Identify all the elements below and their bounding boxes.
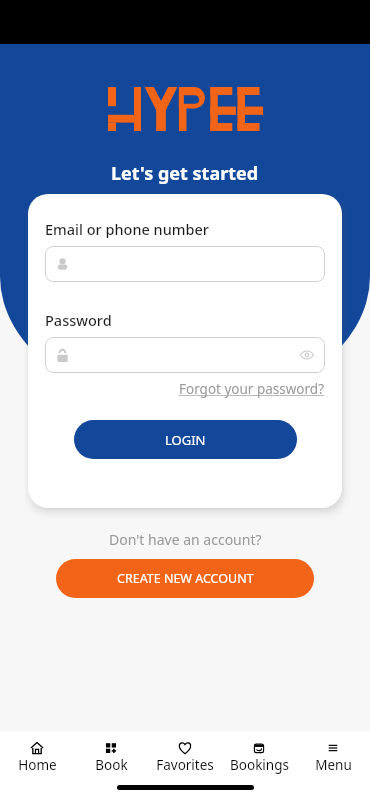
- other: Favorites: [179, 742, 191, 754]
- button[interactable]: Home: [0, 731, 74, 779]
- staticText: Don't have an account?: [109, 530, 262, 549]
- button[interactable]: Menu: [296, 731, 370, 779]
- other: Menu: [327, 742, 339, 754]
- staticText: Favorites: [156, 756, 214, 774]
- other: Bookings: [253, 742, 265, 754]
- other: Home: [31, 742, 43, 754]
- button[interactable]: LOGIN: [74, 420, 297, 459]
- staticText: Password: [45, 310, 112, 330]
- button[interactable]: Bookings: [222, 731, 296, 779]
- staticText: Email or phone number: [45, 219, 209, 239]
- staticText: Menu: [315, 756, 352, 774]
- button[interactable]: [45, 246, 325, 282]
- staticText: Home: [18, 756, 57, 774]
- staticText: Bookings: [230, 756, 289, 774]
- staticText: CREATE NEW ACCOUNT: [117, 570, 254, 587]
- other: Show password: [300, 348, 314, 362]
- staticText: LOGIN: [165, 431, 206, 449]
- button[interactable]: Favorites: [148, 731, 222, 779]
- button[interactable]: Show password: [45, 337, 325, 373]
- button[interactable]: Book: [74, 731, 148, 779]
- button[interactable]: CREATE NEW ACCOUNT: [56, 559, 314, 598]
- button[interactable]: Forgot your password?: [179, 380, 325, 398]
- staticText: Let's get started: [111, 161, 259, 186]
- other: Book: [105, 742, 117, 754]
- staticText: Book: [95, 756, 128, 774]
